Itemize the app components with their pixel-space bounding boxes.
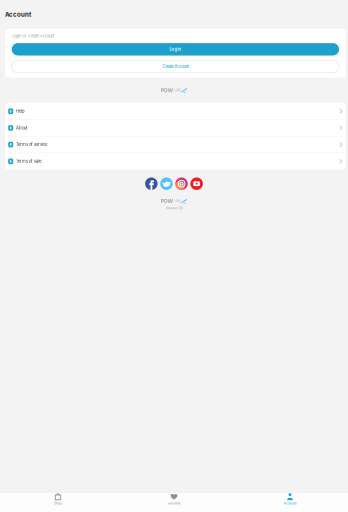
staticText: Shop — [54, 501, 62, 505]
staticText: LINE — [174, 199, 181, 203]
button[interactable]: Account — [232, 493, 348, 512]
button[interactable]: Instagram — [175, 177, 188, 190]
staticText: Help — [16, 109, 25, 114]
staticText: POW — [160, 87, 173, 94]
staticText: Version 1.0 — [165, 206, 182, 210]
staticText: About — [16, 125, 27, 130]
staticText: Create Account — [162, 64, 188, 69]
button[interactable]: YouTube — [190, 177, 203, 190]
button[interactable]: Terms of sale — [5, 153, 346, 169]
button[interactable]: Favorite — [116, 493, 232, 512]
staticText: Terms of sale — [16, 159, 41, 164]
button[interactable]: Shop — [0, 493, 116, 512]
staticText: Terms of service — [16, 142, 47, 147]
staticText: Login — [169, 47, 181, 52]
staticText: Account — [283, 501, 296, 505]
button[interactable]: Create Account — [12, 60, 339, 73]
staticText: POW — [160, 198, 173, 204]
staticText: Favorite — [167, 501, 180, 505]
button[interactable]: Login — [12, 43, 339, 55]
staticText: Account — [5, 11, 31, 18]
button[interactable]: About — [5, 120, 346, 136]
button[interactable]: Terms of service — [5, 136, 346, 153]
button[interactable]: Help — [5, 103, 346, 120]
button[interactable]: Twitter — [160, 177, 173, 190]
button[interactable]: Facebook — [145, 177, 158, 190]
staticText: Login Or Create Account — [12, 34, 54, 38]
staticText: LINE — [174, 88, 181, 92]
